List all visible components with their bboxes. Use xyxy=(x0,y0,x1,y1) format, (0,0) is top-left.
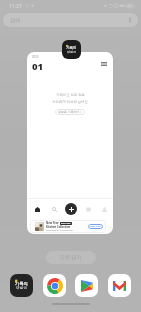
button[interactable]: 새로운 기록하기 › xyxy=(55,109,85,115)
button[interactable]: App icon xyxy=(62,40,81,59)
staticText: New Year xyxy=(46,221,60,225)
staticText: 새로운 기록하기 › xyxy=(58,110,82,114)
staticText: SHOP NOW xyxy=(90,225,101,228)
button[interactable]: 모두 닫기 xyxy=(46,251,96,264)
staticText: 2025 xyxy=(32,55,39,59)
staticText: 01 xyxy=(32,60,44,73)
button[interactable]: Home xyxy=(32,204,43,215)
staticText: 기록하고 싶은 일을 xyxy=(56,92,85,97)
staticText: Kitchen Collection xyxy=(46,225,71,229)
staticText: 50% OFF xyxy=(61,222,71,225)
button[interactable]: SHOP NOW xyxy=(88,224,103,229)
button[interactable]: Notes app xyxy=(10,274,33,297)
button[interactable]: Chrome xyxy=(43,274,66,297)
button[interactable]: Add xyxy=(65,203,77,215)
button[interactable]: Play Store xyxy=(75,274,98,297)
staticText: 기록의 xyxy=(66,46,77,50)
button[interactable]: 2025 xyxy=(27,52,113,234)
button[interactable]: Gmail xyxy=(108,274,131,297)
button[interactable]: Profile xyxy=(99,204,110,215)
staticText: 자유롭게 작성해 보세요 xyxy=(52,99,88,104)
staticText: 모두 닫기 xyxy=(60,254,82,261)
staticText: Sponsored by Home Brands xyxy=(46,229,73,232)
button[interactable]: Calendar xyxy=(83,204,94,215)
button[interactable]: New Year xyxy=(30,220,106,233)
staticText: 기록의 xyxy=(15,281,28,286)
button[interactable]: Menu xyxy=(100,60,108,68)
staticText: 재발견 xyxy=(16,286,27,291)
button[interactable]: Search xyxy=(49,204,60,215)
staticText: 검색 xyxy=(10,17,20,23)
staticText: 11:27 xyxy=(9,3,22,10)
staticText: 재발견 xyxy=(67,50,76,54)
